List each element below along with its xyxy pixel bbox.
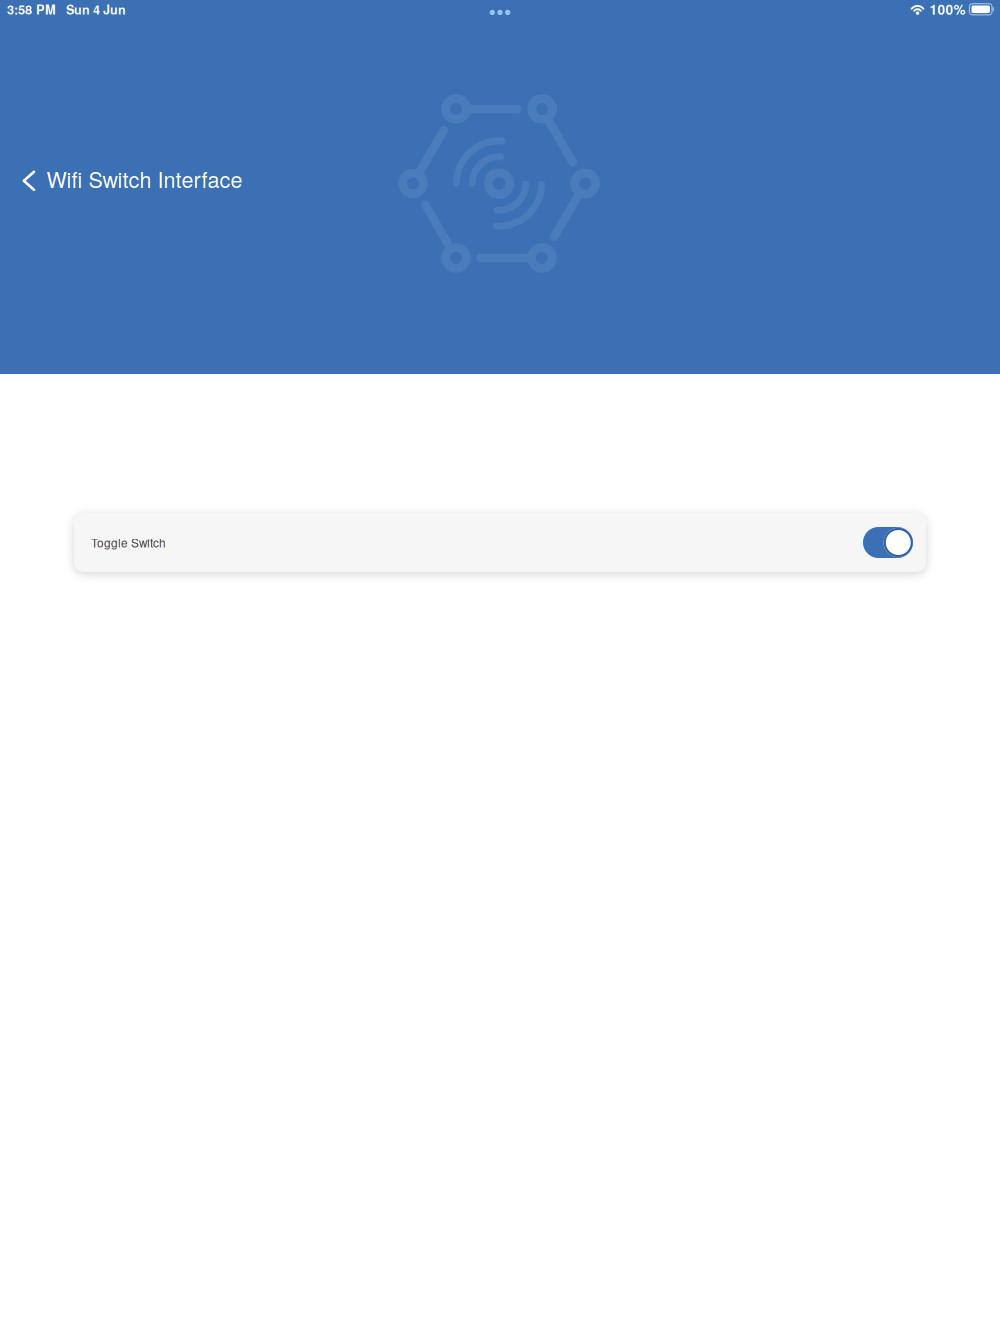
button[interactable]: Wifi Switch Interface: [0, 170, 1000, 191]
staticText: 100%: [929, 0, 965, 19]
staticText: Wifi Switch Interface: [46, 163, 242, 194]
button[interactable]: Toggle Switch: [74, 513, 926, 572]
staticText: 3:58 PM: [7, 0, 56, 18]
staticText: Sun 4 Jun: [66, 0, 126, 18]
staticText: Toggle Switch: [91, 534, 166, 551]
